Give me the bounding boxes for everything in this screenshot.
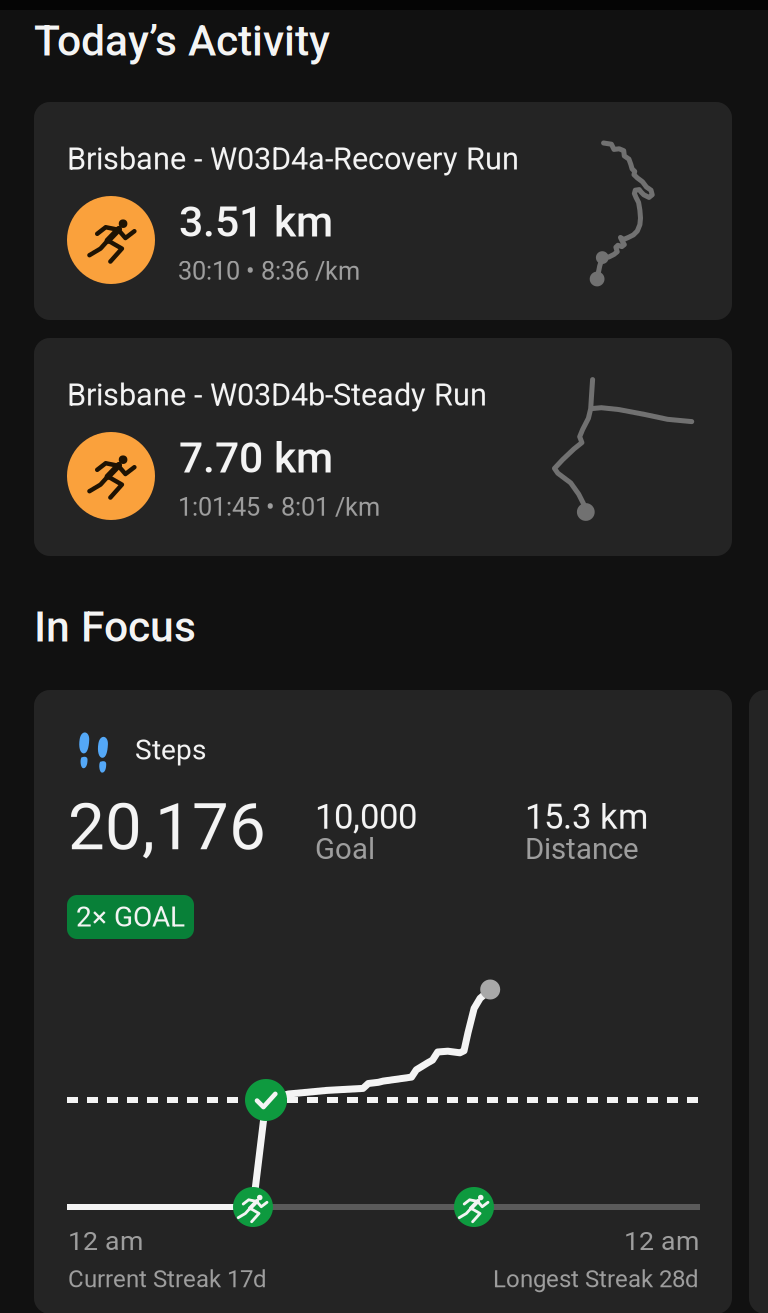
button[interactable]: Steps	[34, 690, 732, 1313]
staticText: 1:01:45 • 8:01 /km	[178, 492, 380, 522]
button[interactable]: Brisbane - W03D4b-Steady Run	[34, 338, 732, 556]
staticText: 15.3 km	[525, 797, 648, 837]
staticText: 12 am	[68, 1225, 143, 1257]
staticText: 30:10 • 8:36 /km	[178, 256, 360, 286]
staticText: 3.51 km	[179, 197, 333, 247]
staticText: 20,176	[68, 789, 266, 865]
staticText: Steps	[135, 734, 206, 766]
staticText: Longest Streak 28d	[493, 1265, 699, 1293]
staticText: Current Streak 17d	[68, 1265, 267, 1293]
staticText: Today’s Activity	[34, 16, 330, 66]
staticText: 10,000	[315, 797, 417, 837]
staticText: 7.70 km	[179, 433, 333, 483]
staticText: Distance	[525, 832, 639, 866]
staticText: Brisbane - W03D4b-Steady Run	[67, 377, 487, 413]
staticText: Brisbane - W03D4a-Recovery Run	[67, 141, 519, 177]
staticText: 12 am	[624, 1225, 699, 1257]
staticText: In Focus	[34, 602, 196, 652]
button[interactable]: Brisbane - W03D4a-Recovery Run	[34, 102, 732, 320]
staticText: 2× GOAL	[76, 901, 185, 933]
staticText: Goal	[315, 832, 375, 866]
